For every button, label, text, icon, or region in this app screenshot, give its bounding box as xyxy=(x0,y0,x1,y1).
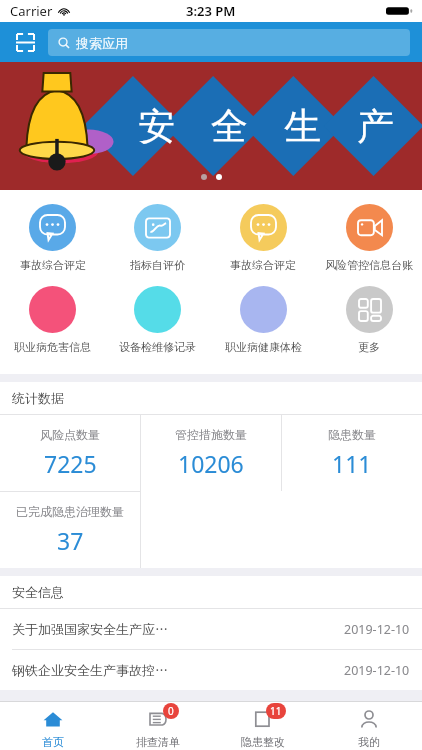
staticText: 风险点数量 xyxy=(40,427,100,442)
staticText: 指标自评价 xyxy=(130,258,185,272)
button[interactable]: 事故综合评定 xyxy=(0,200,105,276)
button[interactable]: 钢铁企业安全生产事故控制措施 xyxy=(0,650,422,690)
staticText: 统计数据 xyxy=(12,390,64,406)
staticText: 首页 xyxy=(42,735,64,749)
button[interactable]: 设备检维修记录 xyxy=(105,282,210,358)
staticText: 全 xyxy=(211,103,248,150)
staticText: 0 xyxy=(168,704,174,718)
staticText: 我的 xyxy=(358,735,380,749)
button[interactable]: 职业病健康体检 xyxy=(210,282,316,358)
staticText: 11 xyxy=(270,704,282,718)
button[interactable]: 更多 xyxy=(316,282,422,358)
staticText: 2019-12-10 xyxy=(344,621,410,638)
staticText: 风险管控信息台账 xyxy=(325,258,413,272)
button[interactable]: 风险管控信息台账 xyxy=(316,200,422,276)
button[interactable]: 管控措施数量 xyxy=(141,415,281,491)
button[interactable]: 搜索应用 xyxy=(48,29,410,56)
button[interactable]: 0 xyxy=(105,702,210,750)
staticText: 排查清单 xyxy=(136,735,180,749)
staticText: 职业病危害信息 xyxy=(14,340,91,354)
staticText: 隐患整改 xyxy=(241,735,285,749)
staticText: 事故综合评定 xyxy=(20,258,86,272)
button[interactable]: 职业病危害信息 xyxy=(0,282,105,358)
button[interactable]: 11 xyxy=(210,702,316,750)
staticText: 37 xyxy=(57,525,84,556)
button[interactable]: 已完成隐患治理数量 xyxy=(0,492,140,568)
staticText: 事故综合评定 xyxy=(230,258,296,272)
staticText: 安全信息 xyxy=(12,584,64,600)
staticText: Carrier xyxy=(10,2,53,20)
staticText: 搜索应用 xyxy=(76,35,128,51)
button[interactable]: 风险点数量 xyxy=(0,415,140,491)
staticText: 职业病健康体检 xyxy=(225,340,302,354)
button[interactable]: 事故综合评定 xyxy=(210,200,316,276)
staticText: 10206 xyxy=(178,448,244,479)
staticText: 生 xyxy=(284,103,321,150)
staticText: 产 xyxy=(357,103,394,150)
staticText: 安 xyxy=(138,103,175,150)
staticText: 2019-12-10 xyxy=(344,662,410,679)
staticText: 管控措施数量 xyxy=(175,427,247,442)
button[interactable]: 隐患数量 xyxy=(282,415,422,491)
staticText: 关于加强国家安全生产应急救援队新闻宣传报道... xyxy=(12,621,178,637)
button[interactable]: 我的 xyxy=(316,702,422,750)
staticText: 3:23 PM xyxy=(186,2,236,20)
button[interactable]: 首页 xyxy=(0,702,105,750)
staticText: 隐患数量 xyxy=(328,427,376,442)
staticText: 已完成隐患治理数量 xyxy=(16,504,124,519)
staticText: 钢铁企业安全生产事故控制措施 xyxy=(12,662,178,678)
button[interactable]: Scan xyxy=(12,29,38,55)
button[interactable]: 关于加强国家安全生产应急救援队新闻宣传报道... xyxy=(0,609,422,649)
button[interactable]: 指标自评价 xyxy=(105,200,210,276)
staticText: 设备检维修记录 xyxy=(119,340,196,354)
staticText: 更多 xyxy=(358,340,380,354)
staticText: 7225 xyxy=(44,448,97,479)
staticText: 111 xyxy=(332,448,372,479)
